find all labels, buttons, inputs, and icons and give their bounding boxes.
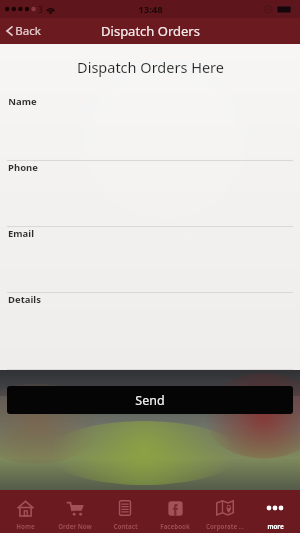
staticText: Facebook [160, 522, 190, 530]
staticText: Email [8, 227, 34, 240]
staticText: Contact [113, 522, 138, 530]
button[interactable]: more [250, 490, 300, 533]
staticText: Dispatch Orders [101, 22, 200, 40]
staticText: Order Now [58, 522, 92, 530]
button[interactable]: Email [0, 227, 300, 293]
button[interactable]: Details [0, 293, 300, 370]
staticText: 13:48 [138, 3, 163, 16]
staticText: Corporate ... [206, 522, 244, 530]
staticText: Home [16, 522, 35, 530]
staticText: Details [8, 293, 41, 306]
button[interactable]: Home [0, 490, 50, 533]
button[interactable]: Corporate ... [200, 490, 250, 533]
button[interactable]: Send [7, 386, 293, 414]
button[interactable]: Facebook [150, 490, 200, 533]
staticText: more [267, 522, 284, 530]
button[interactable]: Name [0, 95, 300, 161]
button[interactable]: Back [6, 18, 41, 44]
button[interactable]: Phone [0, 161, 300, 227]
staticText: Phone [8, 161, 38, 174]
button[interactable]: Contact [100, 490, 150, 533]
staticText: Send [135, 392, 165, 409]
staticText: Back [15, 23, 41, 39]
staticText: Dispatch Orders Here [77, 57, 224, 77]
staticText: 3 [38, 4, 43, 15]
staticText: Name [8, 95, 37, 108]
button[interactable]: Order Now [50, 490, 100, 533]
